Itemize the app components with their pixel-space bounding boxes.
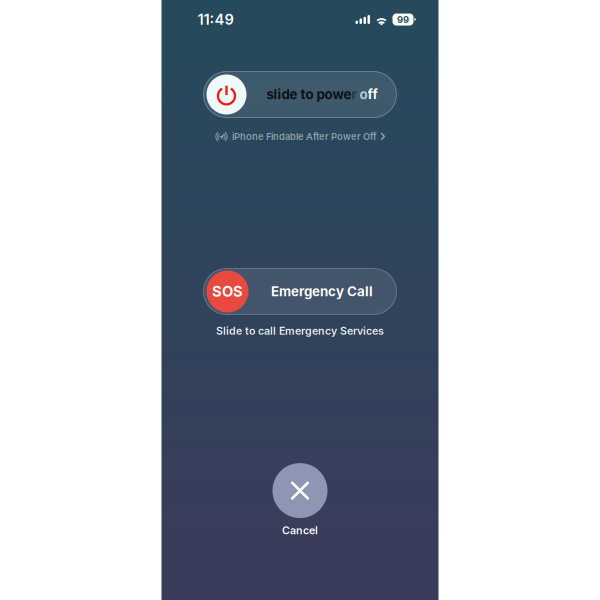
staticText: ff xyxy=(367,87,377,102)
staticText: 11:49 xyxy=(197,11,233,28)
staticText: r xyxy=(351,87,356,102)
staticText xyxy=(356,87,359,102)
button[interactable]: iPhone Findable After Power Off xyxy=(214,128,386,144)
staticText: o xyxy=(359,87,367,102)
staticText: iPhone Findable After Power Off xyxy=(232,131,377,142)
staticText: Emergency Call xyxy=(271,284,373,299)
button[interactable]: Emergency Call xyxy=(203,268,396,314)
button[interactable]: slide to powe xyxy=(203,71,396,117)
button[interactable]: Cancel xyxy=(272,463,327,537)
staticText: Cancel xyxy=(282,524,318,537)
staticText: SOS xyxy=(212,283,243,300)
staticText: Slide to call Emergency Services xyxy=(216,324,384,337)
staticText: 99 xyxy=(397,14,409,25)
staticText: slide to powe xyxy=(266,87,351,102)
